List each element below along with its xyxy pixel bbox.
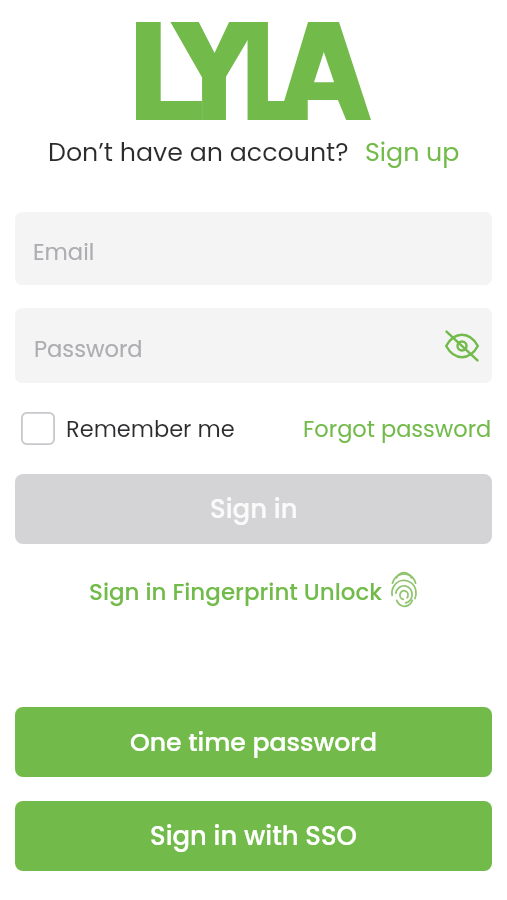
staticText: Sign in with SSO: [150, 818, 357, 854]
button[interactable]: Password: [15, 308, 492, 383]
staticText: One time password: [130, 725, 378, 760]
button[interactable]: Sign in: [15, 474, 492, 544]
button[interactable]: Remember me: [21, 412, 235, 445]
button[interactable]: Sign up: [365, 134, 460, 169]
button[interactable]: One time password: [15, 707, 492, 777]
button[interactable]: Sign in with SSO: [15, 801, 492, 871]
button[interactable]: Sign in Fingerprint Unlock: [0, 575, 507, 609]
staticText: Password: [34, 333, 143, 365]
staticText: Email: [33, 236, 95, 268]
staticText: Remember me: [66, 413, 235, 444]
staticText: Sign up: [365, 134, 460, 169]
button[interactable]: Email: [15, 212, 492, 285]
staticText: Sign in: [210, 491, 298, 527]
button[interactable]: Show password: [440, 324, 484, 368]
staticText: Forgot password: [303, 413, 492, 444]
staticText: Don’t have an account?: [48, 134, 349, 169]
staticText: Sign in Fingerprint Unlock: [89, 576, 382, 608]
button[interactable]: Forgot password: [303, 413, 492, 444]
